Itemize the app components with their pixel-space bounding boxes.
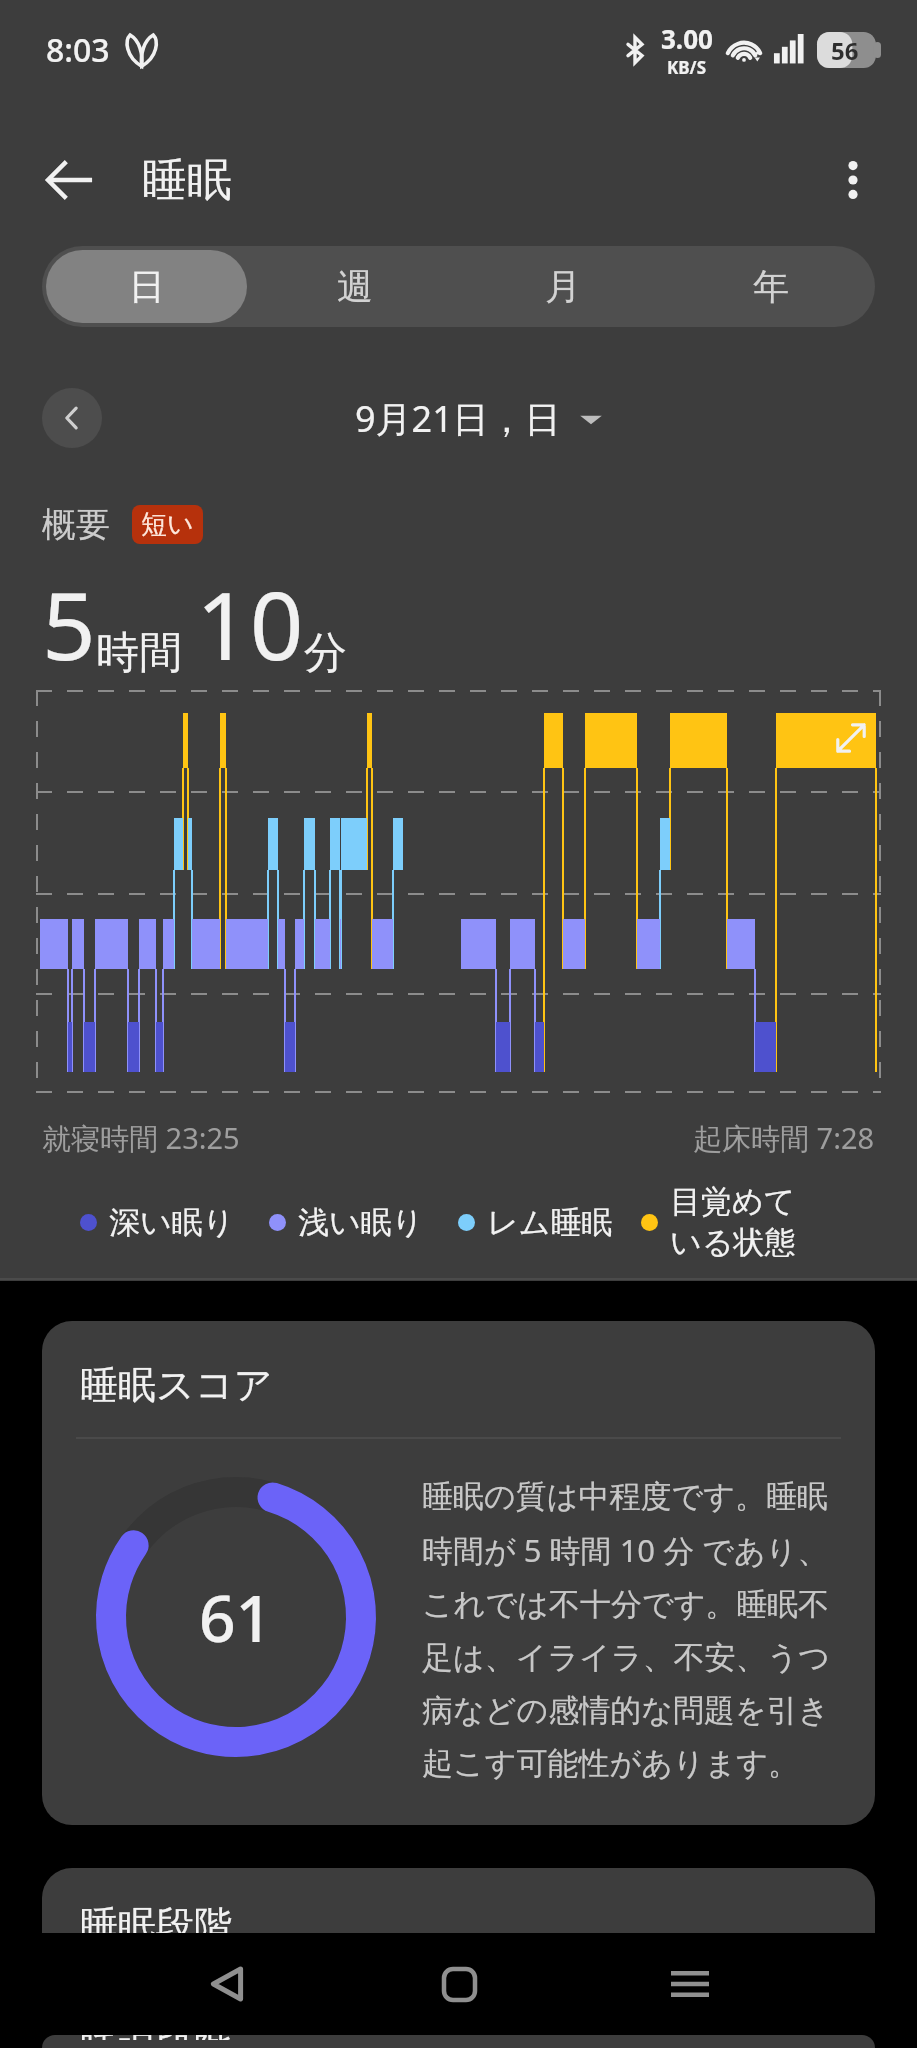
staticText: 56 <box>831 34 859 67</box>
staticText: 睡眠 <box>142 152 232 209</box>
staticText: 10 <box>196 560 304 688</box>
staticText: 8:03 <box>46 28 110 72</box>
staticText: 年 <box>753 264 789 309</box>
button[interactable]: 睡眠スコア <box>42 1321 875 1825</box>
staticText: 分 <box>304 626 347 680</box>
staticText: 5 <box>42 560 96 688</box>
staticText: 3.00 <box>661 21 713 56</box>
button[interactable]: More options <box>813 140 893 220</box>
staticText: 深い眠り <box>109 1203 235 1242</box>
staticText: 睡眠段階 <box>80 1901 232 1949</box>
staticText: 週 <box>337 264 373 309</box>
staticText: 概要 <box>42 503 110 546</box>
button[interactable]: Expand chart <box>827 714 875 762</box>
button[interactable]: 9月21日，日 <box>355 394 603 443</box>
button[interactable]: 睡眠段階 <box>42 1868 875 2028</box>
staticText: 61 <box>199 1574 273 1661</box>
button[interactable]: Recent apps <box>645 1939 735 2029</box>
staticText: 睡眠の質は中程度です。睡眠時間が 5 時間 10 分 であり、これでは不十分です… <box>422 1477 842 1783</box>
button[interactable]: System back <box>182 1939 272 2029</box>
staticText: 9月21日，日 <box>355 394 561 443</box>
staticText: 起床時間 7:28 <box>693 1118 875 1158</box>
button[interactable]: 年 <box>671 250 871 323</box>
button[interactable]: Home <box>414 1939 504 2029</box>
staticText: 睡眠段階 <box>80 2035 232 2040</box>
staticText: 日 <box>129 264 165 309</box>
button[interactable]: Previous day <box>42 388 102 448</box>
staticText: 就寝時間 23:25 <box>42 1118 240 1158</box>
button[interactable]: 週 <box>255 250 455 323</box>
staticText: 短い <box>141 508 194 541</box>
staticText: 浅い眠り <box>298 1203 424 1242</box>
button[interactable]: Back <box>30 140 110 220</box>
staticText: 月 <box>545 264 581 309</box>
staticText: 睡眠スコア <box>80 1361 273 1409</box>
staticText: 時間 <box>96 626 182 680</box>
button[interactable]: 月 <box>463 250 663 323</box>
staticText: 目覚めている状態 <box>670 1182 800 1263</box>
button[interactable]: 日 <box>46 250 247 323</box>
staticText: KB/S <box>667 56 707 79</box>
staticText: レム睡眠 <box>487 1203 613 1242</box>
